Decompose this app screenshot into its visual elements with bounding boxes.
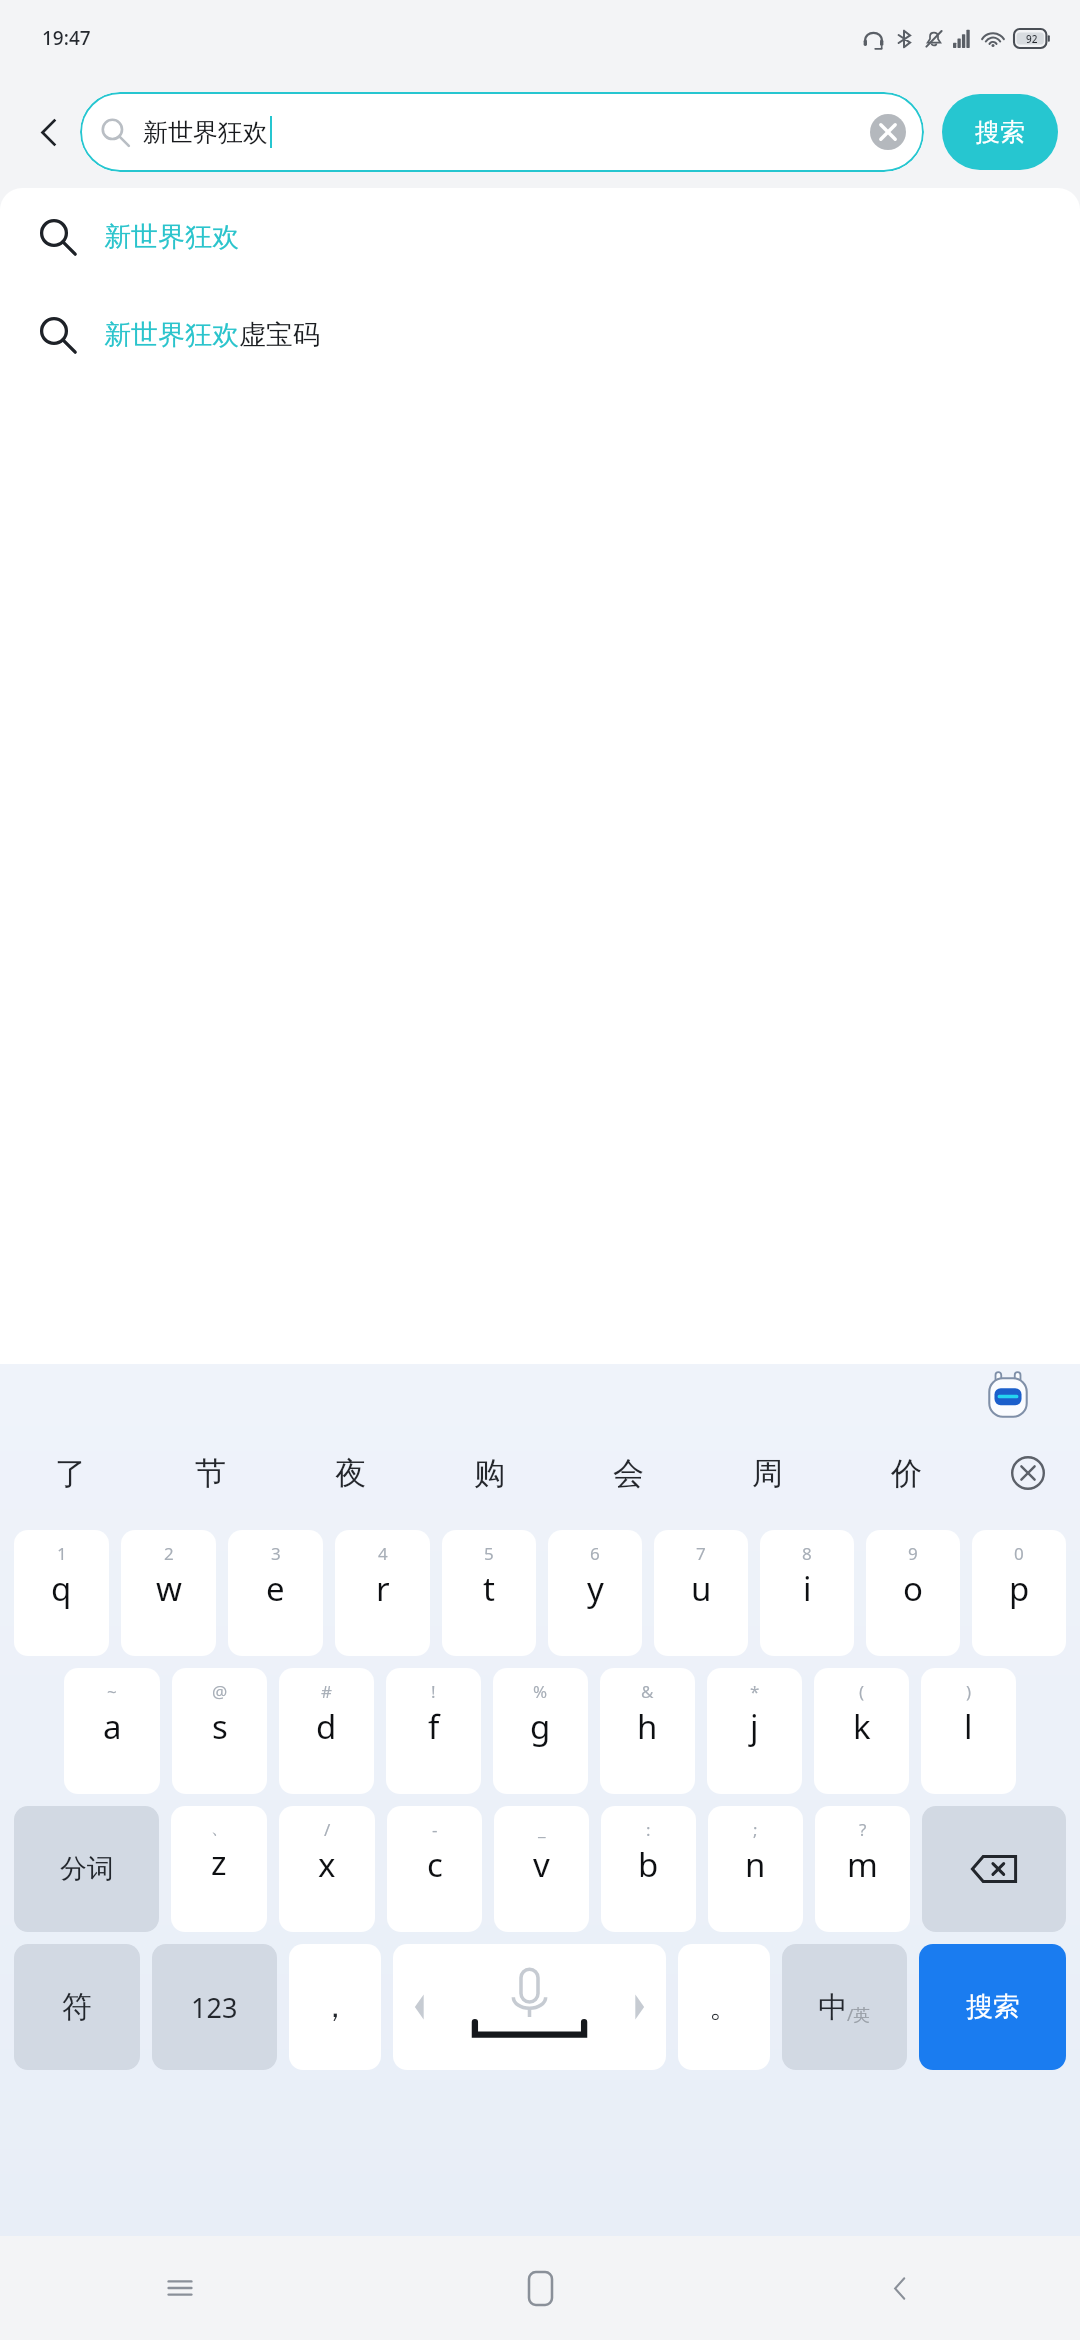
staticText: l xyxy=(964,1704,973,1749)
button[interactable]: 3 xyxy=(228,1530,323,1656)
button[interactable]: Back xyxy=(720,2236,1080,2340)
staticText: / xyxy=(324,1818,331,1841)
button[interactable]: ; xyxy=(708,1806,803,1932)
button[interactable]: Home xyxy=(360,2236,720,2340)
staticText: @ xyxy=(212,1680,228,1703)
button[interactable]: & xyxy=(600,1668,695,1794)
staticText: c xyxy=(427,1842,443,1887)
staticText: a xyxy=(103,1704,122,1749)
button[interactable]: 节 xyxy=(140,1430,280,1516)
staticText: 8 xyxy=(802,1542,812,1565)
staticText: 搜索 xyxy=(975,117,1025,148)
staticText: z xyxy=(211,1840,227,1885)
staticText: ， xyxy=(320,1988,350,2026)
button[interactable]: 8 xyxy=(760,1530,854,1656)
button[interactable]: 搜索 xyxy=(942,94,1058,170)
staticText: u xyxy=(691,1566,712,1611)
staticText: 了 xyxy=(55,1454,86,1493)
staticText: q xyxy=(51,1566,72,1611)
button[interactable]: 新世界狂欢 xyxy=(0,286,1080,384)
button[interactable]: 周 xyxy=(698,1430,837,1516)
staticText: 6 xyxy=(590,1542,600,1565)
button[interactable]: ~ xyxy=(64,1668,160,1794)
staticText: w xyxy=(156,1566,182,1611)
button[interactable]: @ xyxy=(172,1668,267,1794)
button[interactable]: 4 xyxy=(335,1530,430,1656)
staticText: e xyxy=(266,1566,285,1611)
staticText: _ xyxy=(538,1818,546,1841)
button[interactable]: ? xyxy=(815,1806,910,1932)
staticText: ? xyxy=(859,1818,867,1841)
staticText: 1 xyxy=(57,1542,67,1565)
staticText: g xyxy=(530,1704,551,1749)
button[interactable]: 1 xyxy=(14,1530,109,1656)
button[interactable]: ) xyxy=(921,1668,1016,1794)
button[interactable]: Close candidates xyxy=(976,1430,1080,1516)
button[interactable]: _ xyxy=(494,1806,589,1932)
button[interactable]: Back xyxy=(20,103,78,161)
staticText: 。 xyxy=(709,1988,739,2026)
staticText: - xyxy=(432,1818,438,1841)
button[interactable]: 7 xyxy=(654,1530,748,1656)
button[interactable]: 新世界狂欢 xyxy=(80,92,924,172)
staticText: & xyxy=(641,1680,654,1703)
button[interactable]: 6 xyxy=(548,1530,642,1656)
staticText: ; xyxy=(753,1818,758,1841)
staticText: 123 xyxy=(191,1989,238,2026)
staticText: v xyxy=(533,1842,550,1887)
staticText: f xyxy=(428,1704,440,1749)
button[interactable]: 123 xyxy=(152,1944,277,2070)
staticText: 搜索 xyxy=(966,1990,1020,2024)
button[interactable]: 会 xyxy=(559,1430,698,1516)
button[interactable]: 购 xyxy=(420,1430,559,1516)
staticText: 3 xyxy=(271,1542,281,1565)
button[interactable]: 。 xyxy=(678,1944,770,2070)
button[interactable]: - xyxy=(387,1806,482,1932)
staticText: ! xyxy=(431,1680,436,1703)
button[interactable]: 搜索 xyxy=(919,1944,1066,2070)
staticText: m xyxy=(847,1842,878,1887)
button[interactable]: 夜 xyxy=(280,1430,420,1516)
staticText: 节 xyxy=(195,1454,226,1493)
button[interactable]: 、 xyxy=(171,1806,267,1932)
button[interactable]: 符 xyxy=(14,1944,140,2070)
button[interactable]: 分词 xyxy=(14,1806,159,1932)
staticText: 虚宝码 xyxy=(239,318,320,352)
button[interactable]: 了 xyxy=(0,1430,140,1516)
button[interactable]: Backspace xyxy=(922,1806,1066,1932)
button[interactable]: ( xyxy=(814,1668,909,1794)
button[interactable]: ! xyxy=(386,1668,481,1794)
button[interactable]: / xyxy=(279,1806,375,1932)
button[interactable]: 0 xyxy=(972,1530,1066,1656)
button[interactable]: ， xyxy=(289,1944,381,2070)
button[interactable]: 价 xyxy=(837,1430,976,1516)
staticText: 92 xyxy=(1026,32,1038,46)
button[interactable]: Recents xyxy=(0,2236,360,2340)
staticText: ) xyxy=(966,1680,972,1703)
button[interactable]: # xyxy=(279,1668,374,1794)
staticText: 新世界狂欢 xyxy=(104,318,239,352)
button[interactable]: Chinese English toggle xyxy=(782,1944,907,2070)
button[interactable]: 2 xyxy=(121,1530,216,1656)
staticText: h xyxy=(637,1704,658,1749)
staticText: ~ xyxy=(107,1680,117,1703)
staticText: 0 xyxy=(1014,1542,1024,1565)
staticText: s xyxy=(212,1704,228,1749)
staticText: % xyxy=(533,1680,548,1703)
button[interactable]: Clear xyxy=(870,114,906,150)
button[interactable]: 5 xyxy=(442,1530,536,1656)
staticText: 9 xyxy=(908,1542,918,1565)
button[interactable]: IME assistant xyxy=(982,1371,1034,1423)
staticText: 价 xyxy=(891,1454,922,1493)
button[interactable]: : xyxy=(601,1806,696,1932)
staticText: y xyxy=(587,1566,604,1611)
staticText: : xyxy=(646,1818,651,1841)
button[interactable]: Space xyxy=(393,1944,666,2070)
staticText: 周 xyxy=(752,1454,783,1493)
staticText: n xyxy=(745,1842,766,1887)
button[interactable]: 新世界狂欢 xyxy=(0,188,1080,286)
staticText: 7 xyxy=(696,1542,706,1565)
button[interactable]: * xyxy=(707,1668,802,1794)
button[interactable]: 9 xyxy=(866,1530,960,1656)
button[interactable]: % xyxy=(493,1668,588,1794)
